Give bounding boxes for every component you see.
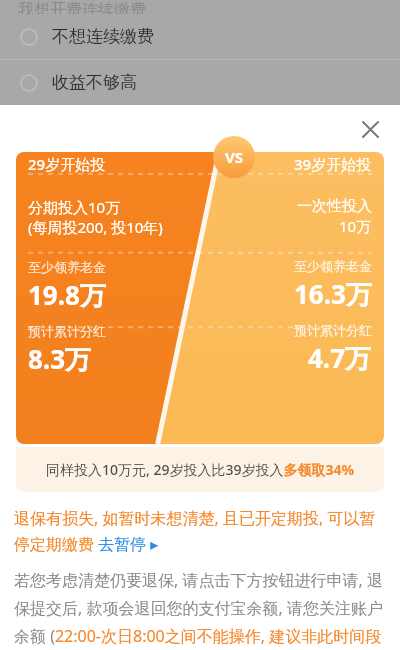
staticText: 16.3万: [294, 276, 372, 312]
staticText: 10万: [339, 216, 372, 236]
button[interactable]: 退保有损失, 如暂时未想清楚, 且已开定期投, 可以暂停定期缴费 去暂停 ▸: [14, 507, 386, 555]
staticText: (每周投200, 投10年): [28, 217, 163, 237]
staticText: 19.8万: [28, 277, 106, 313]
button[interactable]: 收益不够高: [0, 60, 400, 105]
staticText: 至少领养老金: [294, 258, 372, 274]
staticText: 退保有损失, 如暂时未想清楚, 且已开定期投, 可以暂停定期缴费 去暂停 ▸: [14, 507, 386, 555]
staticText: 分期投入10万: [28, 197, 121, 217]
staticText: 29岁开始投: [28, 154, 106, 174]
staticText: 同样投入10万元, 29岁投入比39岁投入多领取34%: [46, 460, 355, 479]
staticText: 收益不够高: [52, 72, 137, 93]
staticText: 8.3万: [28, 341, 92, 377]
staticText: 不想连续缴费: [52, 26, 154, 47]
staticText: 一次性投入: [297, 197, 372, 216]
staticText: 39岁开始投: [294, 154, 372, 174]
staticText: 预计累计分红: [28, 323, 106, 339]
button[interactable]: Close: [350, 109, 390, 149]
staticText: VS: [225, 147, 244, 167]
staticText: 至少领养老金: [28, 259, 106, 275]
staticText: 若您考虑清楚仍要退保, 请点击下方按钮进行申请, 退保提交后, 款项会退回您的支…: [14, 569, 388, 650]
button[interactable]: 不想连续缴费: [0, 14, 400, 59]
staticText: 我想开费连续缴费: [18, 0, 146, 14]
staticText: 预计累计分红: [294, 322, 372, 338]
staticText: 4.7万: [308, 340, 372, 376]
